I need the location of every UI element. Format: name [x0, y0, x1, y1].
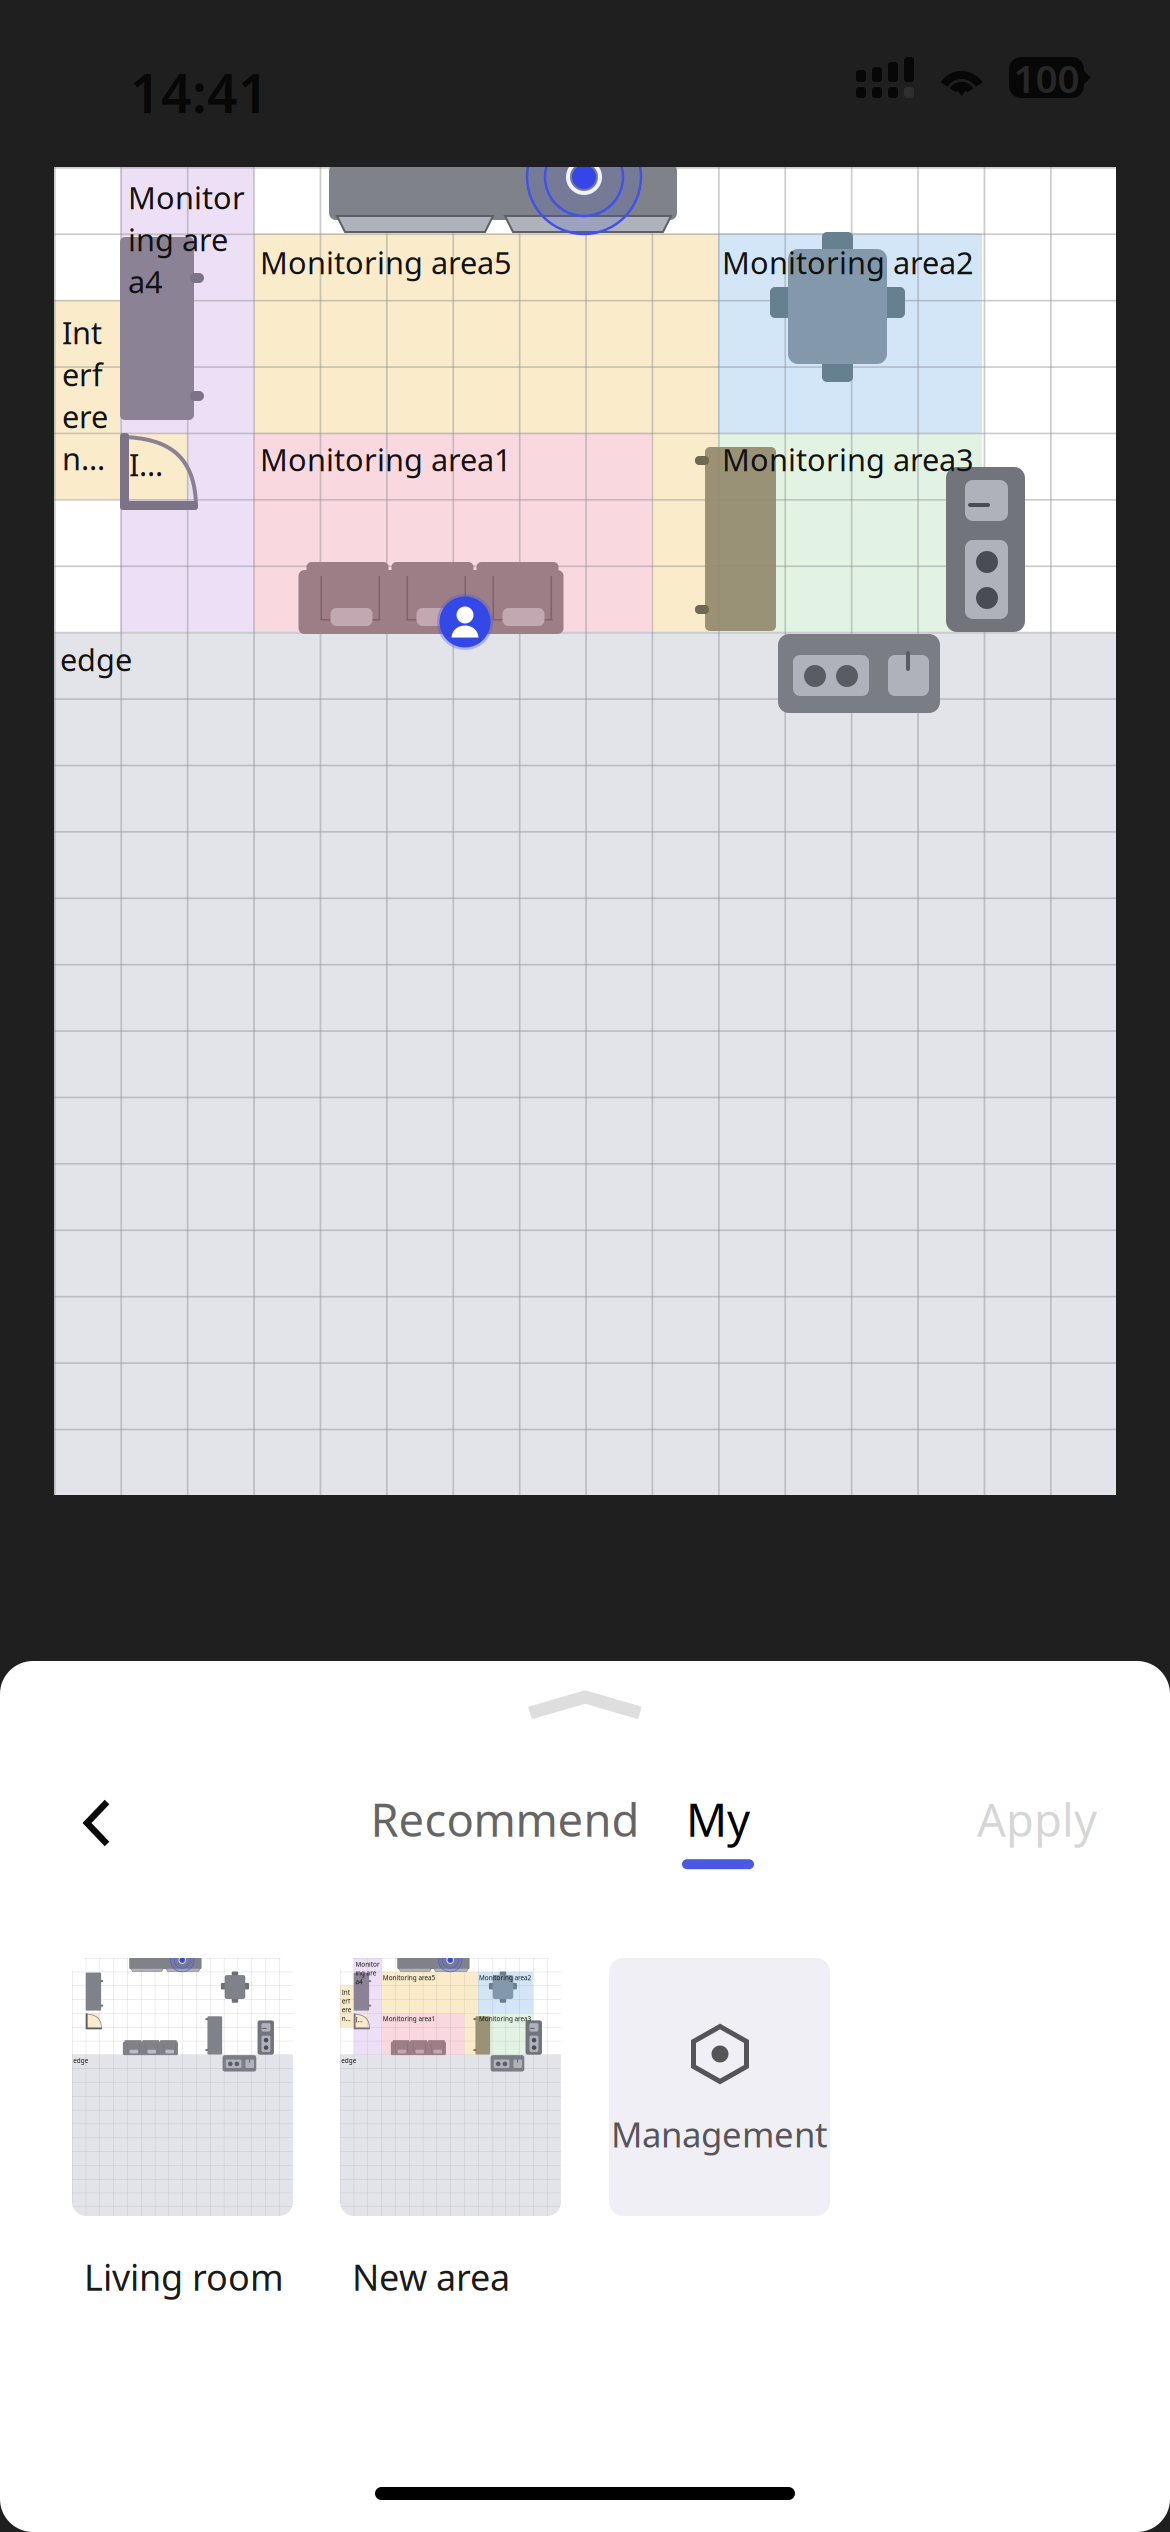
- staticText: n...: [348, 2229, 391, 2270]
- staticText: a4: [414, 2052, 449, 2093]
- staticText: Monitoring area5: [260, 242, 512, 283]
- button[interactable]: Apply: [0, 1661, 1170, 2532]
- staticText: Recommend: [370, 1789, 639, 1849]
- button[interactable]: Back: [0, 1661, 1170, 2532]
- button[interactable]: edge: [0, 1661, 1170, 2532]
- staticText: Monitoring area1: [260, 439, 512, 480]
- staticText: Monitor: [128, 177, 245, 218]
- staticText: a4: [128, 261, 163, 302]
- button[interactable]: Monitor: [0, 1661, 1170, 2532]
- staticText: Management: [611, 2111, 828, 2157]
- staticText: erf: [62, 354, 103, 395]
- button[interactable]: My: [0, 1661, 1170, 2532]
- staticText: Monitoring area2: [722, 242, 974, 283]
- staticText: I...: [129, 444, 163, 485]
- staticText: ing are: [128, 219, 228, 260]
- staticText: erf: [348, 2145, 389, 2186]
- staticText: I...: [415, 2235, 449, 2276]
- button[interactable]: Management: [0, 1661, 1170, 2532]
- staticText: Monitor: [414, 1968, 531, 2009]
- staticText: n...: [62, 438, 105, 479]
- staticText: Monitoring area5: [546, 2033, 798, 2074]
- staticText: edge: [60, 639, 132, 680]
- staticText: Monitoring area3: [722, 439, 974, 480]
- staticText: New area: [352, 2253, 510, 2301]
- staticText: Living room: [84, 2253, 284, 2301]
- staticText: ere: [62, 396, 108, 437]
- staticText: 14:41: [130, 57, 269, 99]
- staticText: Int: [348, 2103, 388, 2144]
- button[interactable]: Recommend: [0, 1661, 1170, 2532]
- staticText: ere: [348, 2187, 394, 2228]
- staticText: ing are: [414, 2010, 514, 2051]
- staticText: 100: [1013, 52, 1079, 104]
- staticText: Int: [62, 312, 102, 353]
- staticText: My: [686, 1789, 750, 1849]
- staticText: Apply: [977, 1789, 1097, 1849]
